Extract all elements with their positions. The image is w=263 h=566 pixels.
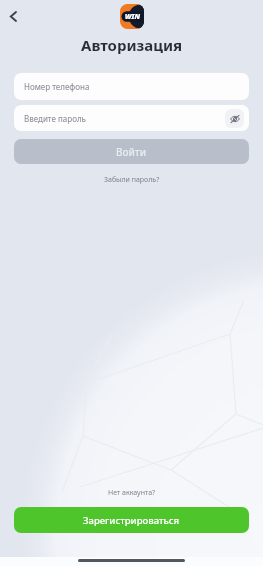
button[interactable]: Back bbox=[2, 5, 24, 27]
button[interactable]: Номер телефона bbox=[14, 73, 249, 100]
staticText: Забыли пароль? bbox=[104, 175, 160, 185]
staticText: Номер телефона bbox=[24, 81, 90, 92]
staticText: Введите пароль bbox=[24, 113, 86, 124]
staticText: Авторизация bbox=[81, 35, 183, 55]
button[interactable]: Введите пароль bbox=[14, 105, 249, 131]
staticText: WIN bbox=[125, 12, 141, 22]
button[interactable]: Зарегистрироваться bbox=[14, 507, 249, 533]
staticText: Нет аккаунта? bbox=[108, 488, 156, 498]
staticText: Войти bbox=[116, 145, 147, 159]
button[interactable]: Забыли пароль? bbox=[98, 172, 166, 188]
button[interactable]: Войти bbox=[14, 139, 249, 164]
button[interactable]: Show password bbox=[225, 109, 244, 128]
staticText: Зарегистрироваться bbox=[83, 514, 180, 527]
